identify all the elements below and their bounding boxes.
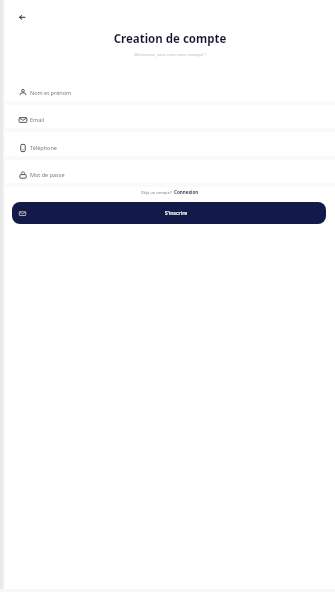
- button[interactable]: S'inscrire: [12, 202, 326, 224]
- button[interactable]: Back: [13, 8, 31, 26]
- button[interactable]: Nom et prénom: [5, 74, 335, 102]
- staticText: Creation de compte: [5, 31, 335, 47]
- staticText: Connexion: [174, 189, 199, 195]
- button[interactable]: Téléphone: [5, 129, 335, 157]
- staticText: S'inscrire: [26, 209, 326, 216]
- staticText: Déjà un compte?: [141, 190, 172, 195]
- button[interactable]: Connexion: [174, 189, 199, 195]
- button[interactable]: Email: [5, 101, 335, 129]
- staticText: Nom et prénom: [30, 89, 72, 96]
- staticText: Bienvenue, vous nous avez manqué !: [5, 52, 335, 58]
- staticText: Téléphone: [30, 144, 57, 151]
- staticText: Email: [30, 116, 45, 123]
- staticText: Mot de passe: [30, 171, 65, 178]
- button[interactable]: Mot de passe: [5, 156, 335, 184]
